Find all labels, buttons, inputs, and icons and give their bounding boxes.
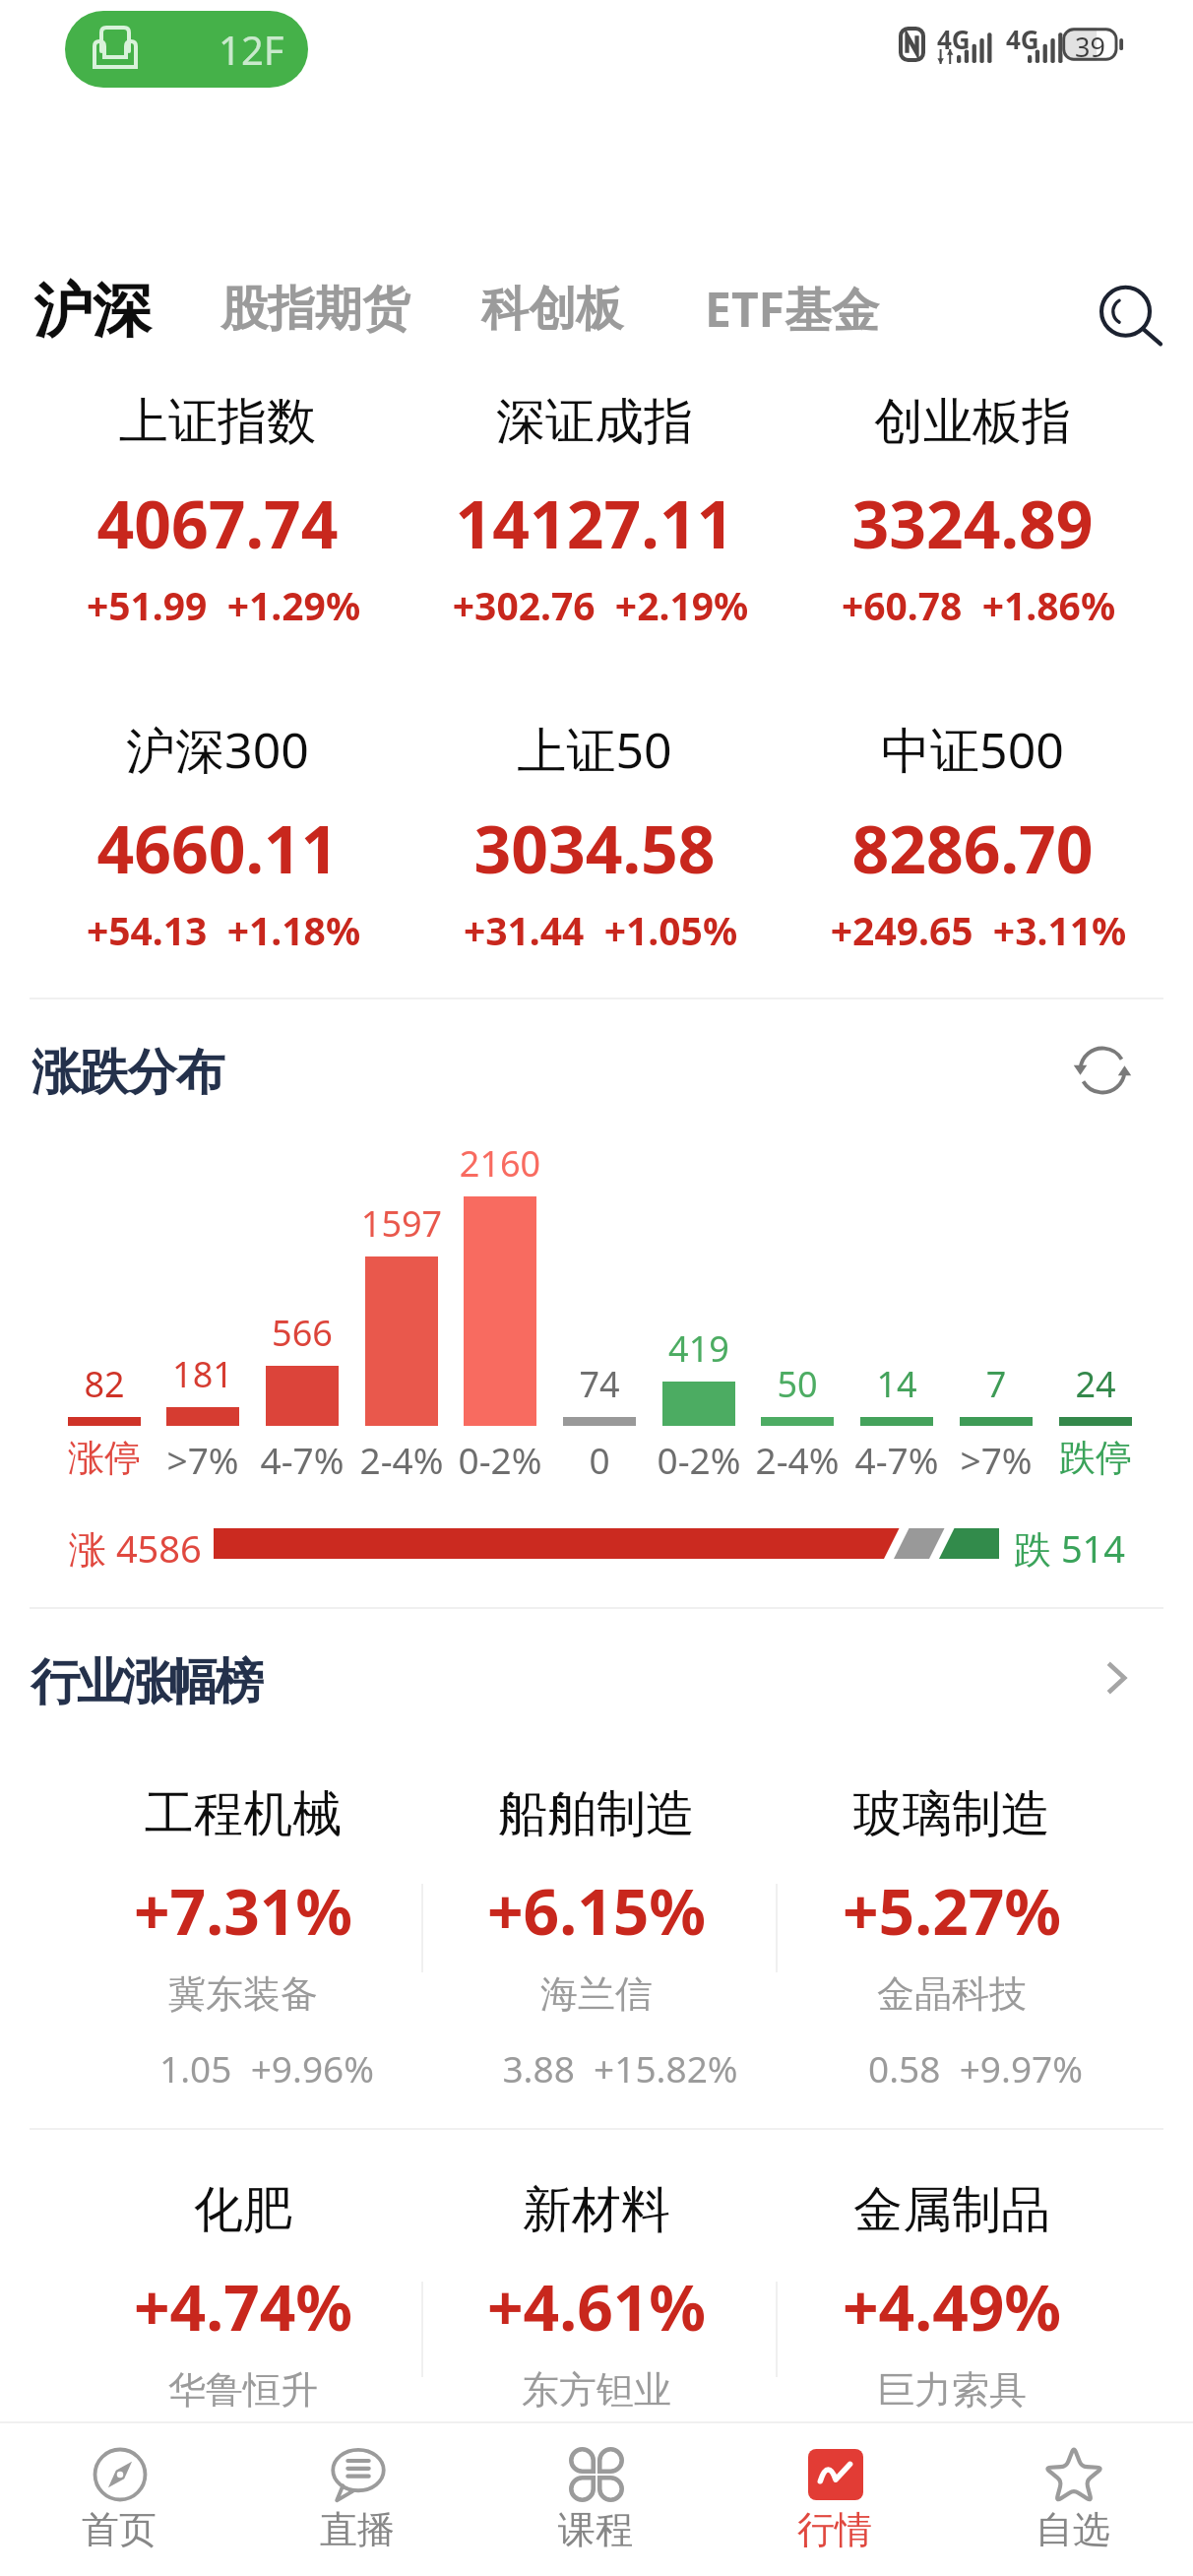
staticText: 4-7% bbox=[798, 1435, 995, 1484]
button[interactable]: 沪深 bbox=[22, 258, 169, 353]
button[interactable] bbox=[563, 1417, 636, 1426]
staticText: 行情 bbox=[716, 2506, 954, 2553]
staticText: 4G bbox=[937, 22, 971, 56]
staticText: 4067.74 bbox=[29, 479, 407, 567]
staticText: 14127.11 bbox=[406, 479, 784, 567]
button[interactable] bbox=[860, 1417, 933, 1426]
staticText: 课程 bbox=[476, 2506, 715, 2553]
staticText: +31.44 +1.05% bbox=[411, 904, 789, 956]
button[interactable]: 金属制品 bbox=[775, 2171, 1129, 2417]
staticText: 科创板 bbox=[481, 280, 623, 339]
staticText: 4660.11 bbox=[29, 804, 407, 892]
button[interactable]: Search bbox=[1079, 282, 1173, 376]
staticText: 冀东装备 bbox=[66, 1970, 420, 2018]
staticText: 跌 514 bbox=[1014, 1522, 1126, 1574]
button[interactable] bbox=[662, 1382, 735, 1426]
staticText: 股指期货 bbox=[220, 280, 409, 339]
staticText: 沪深300 bbox=[29, 716, 407, 783]
button[interactable]: 科创板 bbox=[470, 270, 637, 341]
button[interactable]: 自选 bbox=[954, 2423, 1192, 2576]
staticText: 8286.70 bbox=[784, 804, 1162, 892]
staticText: 行业涨幅榜 bbox=[32, 1651, 262, 1713]
button[interactable]: 首页 bbox=[0, 2423, 238, 2576]
staticText: 华鲁恒升 bbox=[66, 2366, 420, 2414]
staticText: +4.61% bbox=[419, 2264, 774, 2350]
staticText: +51.99 +1.29% bbox=[34, 579, 412, 631]
staticText: 24 bbox=[997, 1360, 1193, 1408]
staticText: 跌停 bbox=[997, 1435, 1193, 1481]
staticText: 50 bbox=[699, 1360, 896, 1408]
button[interactable]: Task 12F bbox=[65, 11, 308, 88]
staticText: +4.74% bbox=[66, 2264, 420, 2350]
staticText: 181 bbox=[104, 1350, 301, 1398]
staticText: 3324.89 bbox=[784, 479, 1162, 567]
staticText: 3034.58 bbox=[406, 804, 784, 892]
staticText: 涨跌分布 bbox=[31, 1042, 224, 1104]
staticText: 玻璃制造 bbox=[775, 1783, 1129, 1845]
staticText: 3.88 +15.82% bbox=[443, 2043, 797, 2093]
staticText: 39 bbox=[1059, 29, 1121, 62]
staticText: 74 bbox=[501, 1360, 698, 1408]
staticText: 工程机械 bbox=[66, 1783, 420, 1845]
staticText: 深证成指 bbox=[406, 391, 784, 453]
button[interactable]: 中证500 bbox=[784, 709, 1162, 985]
button[interactable]: 直播 bbox=[238, 2423, 476, 2576]
staticText: 0.58 +9.97% bbox=[798, 2043, 1153, 2093]
button[interactable]: 工程机械 bbox=[66, 1775, 420, 2100]
button[interactable]: 行情 bbox=[716, 2423, 954, 2576]
button[interactable]: 化肥 bbox=[66, 2171, 420, 2417]
staticText: 船舶制造 bbox=[419, 1783, 774, 1845]
button[interactable]: 股指期货 bbox=[209, 270, 423, 341]
button[interactable] bbox=[464, 1196, 536, 1426]
staticText: 2160 bbox=[402, 1139, 598, 1188]
button[interactable]: 船舶制造 bbox=[419, 1775, 774, 2100]
staticText: 上证50 bbox=[406, 716, 784, 783]
staticText: +249.65 +3.11% bbox=[789, 904, 1167, 956]
staticText: 4G bbox=[1006, 22, 1039, 56]
staticText: 涨停 bbox=[6, 1435, 203, 1481]
staticText: 1597 bbox=[303, 1199, 500, 1248]
staticText: 4-7% bbox=[204, 1435, 401, 1484]
button[interactable]: 沪深300 bbox=[29, 709, 407, 985]
staticText: 0 bbox=[501, 1435, 698, 1484]
staticText: ETF基金 bbox=[705, 277, 879, 342]
button[interactable] bbox=[1059, 1417, 1132, 1426]
staticText: 沪深 bbox=[33, 274, 152, 349]
button[interactable] bbox=[365, 1256, 438, 1426]
staticText: 2-4% bbox=[699, 1435, 896, 1484]
staticText: +7.31% bbox=[66, 1868, 420, 1954]
button[interactable]: 玻璃制造 bbox=[775, 1775, 1129, 2100]
staticText: 涨 4586 bbox=[69, 1522, 202, 1574]
staticText: +5.27% bbox=[775, 1868, 1129, 1954]
staticText: +4.49% bbox=[775, 2264, 1129, 2350]
button[interactable] bbox=[166, 1407, 239, 1426]
button[interactable]: 深证成指 bbox=[406, 384, 784, 660]
staticText: +60.78 +1.86% bbox=[789, 579, 1167, 631]
staticText: 直播 bbox=[238, 2506, 476, 2553]
staticText: 巨力索具 bbox=[775, 2366, 1129, 2414]
staticText: 化肥 bbox=[66, 2179, 420, 2241]
staticText: 金属制品 bbox=[775, 2179, 1129, 2241]
button[interactable]: 课程 bbox=[476, 2423, 715, 2576]
staticText: 自选 bbox=[954, 2506, 1192, 2553]
button[interactable]: Refresh bbox=[1051, 1028, 1150, 1113]
button[interactable]: 上证50 bbox=[406, 709, 784, 985]
staticText: 东方钽业 bbox=[419, 2366, 774, 2414]
staticText: 7 bbox=[898, 1360, 1095, 1408]
button[interactable]: ETF基金 bbox=[693, 270, 898, 341]
staticText: 金晶科技 bbox=[775, 1970, 1129, 2018]
staticText: >7% bbox=[898, 1435, 1095, 1484]
staticText: +6.15% bbox=[419, 1868, 774, 1954]
staticText: 中证500 bbox=[784, 716, 1162, 783]
button[interactable]: 上证指数 bbox=[29, 384, 407, 660]
staticText: 0-2% bbox=[600, 1435, 797, 1484]
staticText: 14 bbox=[798, 1360, 995, 1408]
staticText: 2-4% bbox=[303, 1435, 500, 1484]
button[interactable]: 创业板指 bbox=[784, 384, 1162, 660]
button[interactable]: More industries bbox=[1083, 1646, 1146, 1709]
button[interactable]: 新材料 bbox=[419, 2171, 774, 2417]
